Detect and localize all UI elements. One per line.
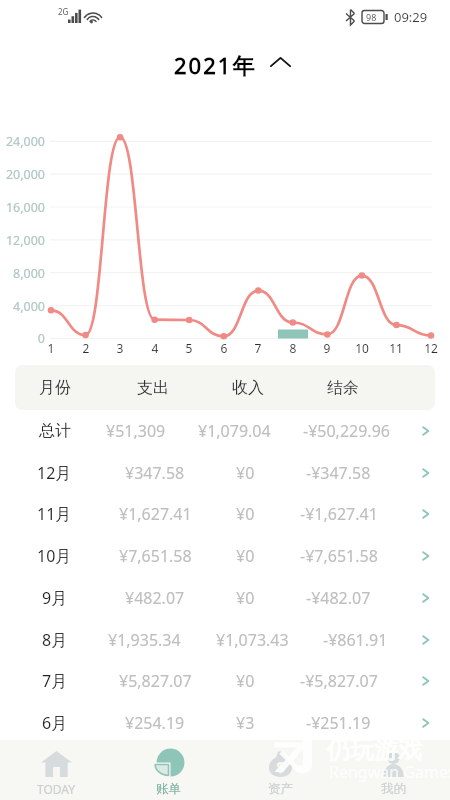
- staticText: 9月: [42, 587, 68, 609]
- staticText: ¥482.07: [125, 587, 185, 609]
- staticText: 7月: [42, 670, 68, 692]
- staticText: 4: [140, 340, 170, 356]
- staticText: 2021年: [174, 50, 257, 80]
- staticText: 8: [278, 340, 308, 356]
- staticText: ¥1,079.04: [198, 420, 271, 442]
- staticText: 8月: [42, 629, 68, 651]
- staticText: ¥0: [236, 545, 255, 567]
- staticText: 12月: [37, 462, 72, 484]
- staticText: 2: [71, 340, 101, 356]
- staticText: ¥1,627.41: [119, 503, 192, 525]
- staticText: -¥50,229.96: [303, 420, 390, 442]
- staticText: 10月: [37, 545, 72, 567]
- staticText: -¥1,627.41: [300, 503, 378, 525]
- staticText: 12,000: [0, 232, 45, 249]
- staticText: 1: [36, 340, 66, 356]
- button[interactable]: 8月: [0, 619, 450, 661]
- staticText: ¥254.19: [125, 712, 185, 734]
- button[interactable]: 总计: [0, 410, 450, 452]
- staticText: 账单: [156, 781, 181, 797]
- button[interactable]: 6月: [0, 702, 450, 744]
- staticText: 11月: [37, 503, 72, 525]
- staticText: 98: [366, 11, 377, 23]
- button[interactable]: 10月: [0, 535, 450, 577]
- staticText: 仍玩游戏: [326, 735, 422, 765]
- staticText: ¥0: [236, 587, 255, 609]
- staticText: ¥3: [236, 712, 255, 734]
- staticText: 总计: [39, 421, 71, 441]
- button[interactable]: 11月: [0, 493, 450, 535]
- staticText: 6: [209, 340, 239, 356]
- staticText: 资产: [268, 781, 293, 797]
- staticText: ¥0: [236, 462, 255, 484]
- staticText: 支出: [137, 378, 169, 398]
- button[interactable]: 9月: [0, 577, 450, 619]
- staticText: -¥7,651.58: [300, 545, 378, 567]
- staticText: 24,000: [0, 133, 45, 150]
- staticText: ¥5,827.07: [119, 670, 192, 692]
- staticText: 0: [0, 330, 45, 347]
- staticText: ¥0: [236, 670, 255, 692]
- button[interactable]: Assets: [224, 740, 337, 800]
- button[interactable]: Mine: [337, 740, 450, 800]
- button[interactable]: 7月: [0, 660, 450, 702]
- staticText: ¥7,651.58: [119, 545, 192, 567]
- staticText: ¥347.58: [125, 462, 185, 484]
- staticText: ¥0: [236, 503, 255, 525]
- staticText: 16,000: [0, 199, 45, 216]
- staticText: -¥5,827.07: [300, 670, 378, 692]
- staticText: 收入: [232, 378, 264, 398]
- staticText: Rengwan Games: [329, 761, 450, 783]
- staticText: 2G: [58, 6, 69, 17]
- staticText: 10: [347, 340, 377, 356]
- staticText: -¥347.58: [306, 462, 371, 484]
- button[interactable]: 2021年: [160, 48, 300, 80]
- staticText: ¥1,073.43: [216, 629, 289, 651]
- staticText: 我的: [381, 781, 406, 797]
- staticText: 3: [105, 340, 135, 356]
- staticText: -¥861.91: [323, 629, 388, 651]
- staticText: 12: [416, 340, 446, 356]
- staticText: -¥251.19: [306, 712, 371, 734]
- staticText: ¥1,935.34: [108, 629, 181, 651]
- staticText: 20,000: [0, 166, 45, 183]
- staticText: 8,000: [0, 265, 45, 282]
- staticText: 7: [243, 340, 273, 356]
- button[interactable]: Today: [0, 740, 112, 800]
- staticText: 09:29: [394, 8, 428, 26]
- staticText: TODAY: [37, 781, 76, 797]
- staticText: 9: [312, 340, 342, 356]
- staticText: ¥51,309: [106, 420, 166, 442]
- staticText: 6月: [42, 712, 68, 734]
- button[interactable]: 12月: [0, 452, 450, 494]
- staticText: 结余: [327, 378, 359, 398]
- staticText: 11: [381, 340, 411, 356]
- button[interactable]: Bills: [112, 740, 224, 800]
- staticText: -¥482.07: [306, 587, 371, 609]
- staticText: 月份: [39, 378, 71, 398]
- staticText: 5: [174, 340, 204, 356]
- staticText: 4,000: [0, 298, 45, 315]
